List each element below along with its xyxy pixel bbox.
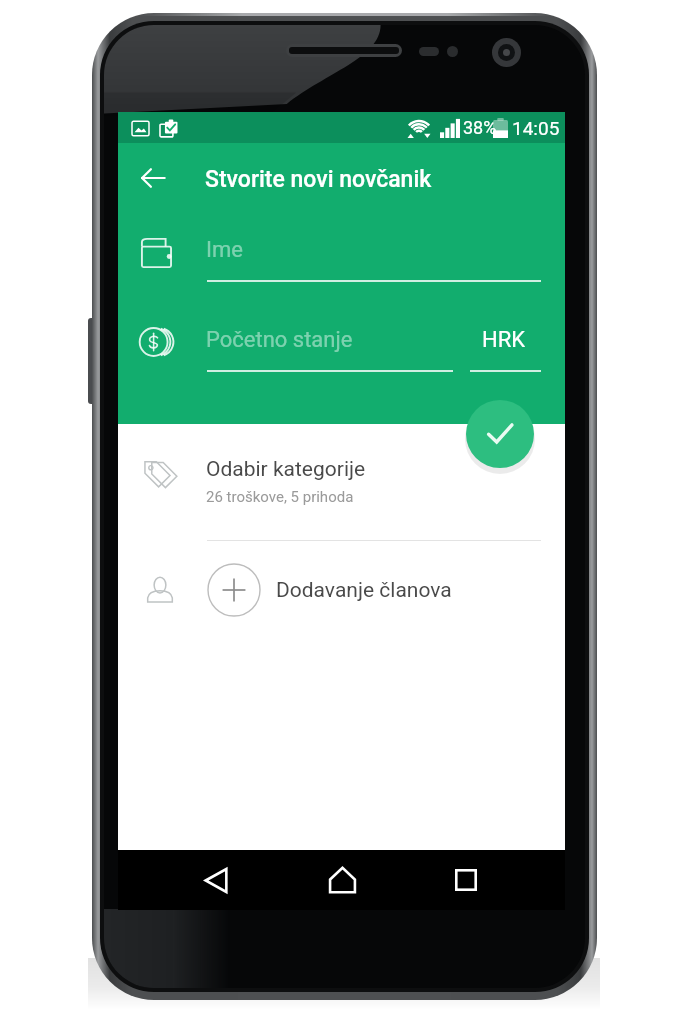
staticText: Stvorite novi novčanik	[205, 166, 432, 193]
staticText: 26 troškove, 5 prihoda	[206, 488, 354, 506]
staticText: Dodavanje članova	[276, 578, 452, 603]
staticText: HRK	[482, 327, 526, 353]
staticText: 38%	[463, 117, 497, 138]
button[interactable]: Recents	[436, 855, 496, 905]
staticText: Početno stanje	[206, 327, 353, 353]
button[interactable]: Dodavanje članova	[118, 541, 565, 657]
button[interactable]: Back	[186, 855, 246, 905]
button[interactable]: Confirm	[466, 400, 534, 468]
staticText: Ime	[206, 237, 243, 263]
staticText: 14:05	[512, 117, 560, 139]
button[interactable]: Back	[120, 145, 186, 211]
staticText: Odabir kategorije	[206, 457, 366, 482]
button[interactable]: Home	[312, 855, 372, 905]
button[interactable]: Odabir kategorije	[118, 424, 565, 540]
